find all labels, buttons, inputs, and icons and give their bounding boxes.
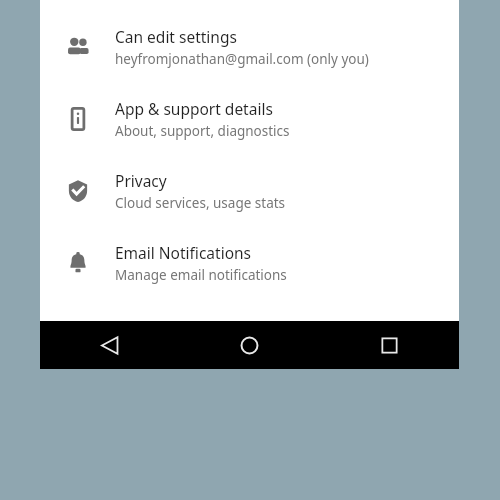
button[interactable]: Email Notifications (40, 227, 459, 299)
staticText: Manage email notifications (115, 266, 287, 284)
staticText: Privacy (115, 170, 167, 191)
staticText: Cloud services, usage stats (115, 194, 286, 212)
staticText: Email Notifications (115, 242, 252, 263)
staticText: App & support details (115, 98, 273, 119)
button[interactable]: App & support details (40, 83, 459, 155)
button[interactable]: Recent apps (319, 321, 459, 369)
staticText: heyfromjonathan@gmail.com (only you) (115, 50, 369, 68)
button[interactable]: Can edit settings (40, 11, 459, 83)
button[interactable]: Home (179, 321, 319, 369)
button[interactable]: Back (40, 321, 179, 369)
staticText: Can edit settings (115, 26, 237, 47)
button[interactable]: Privacy (40, 155, 459, 227)
staticText: About, support, diagnostics (115, 122, 290, 140)
